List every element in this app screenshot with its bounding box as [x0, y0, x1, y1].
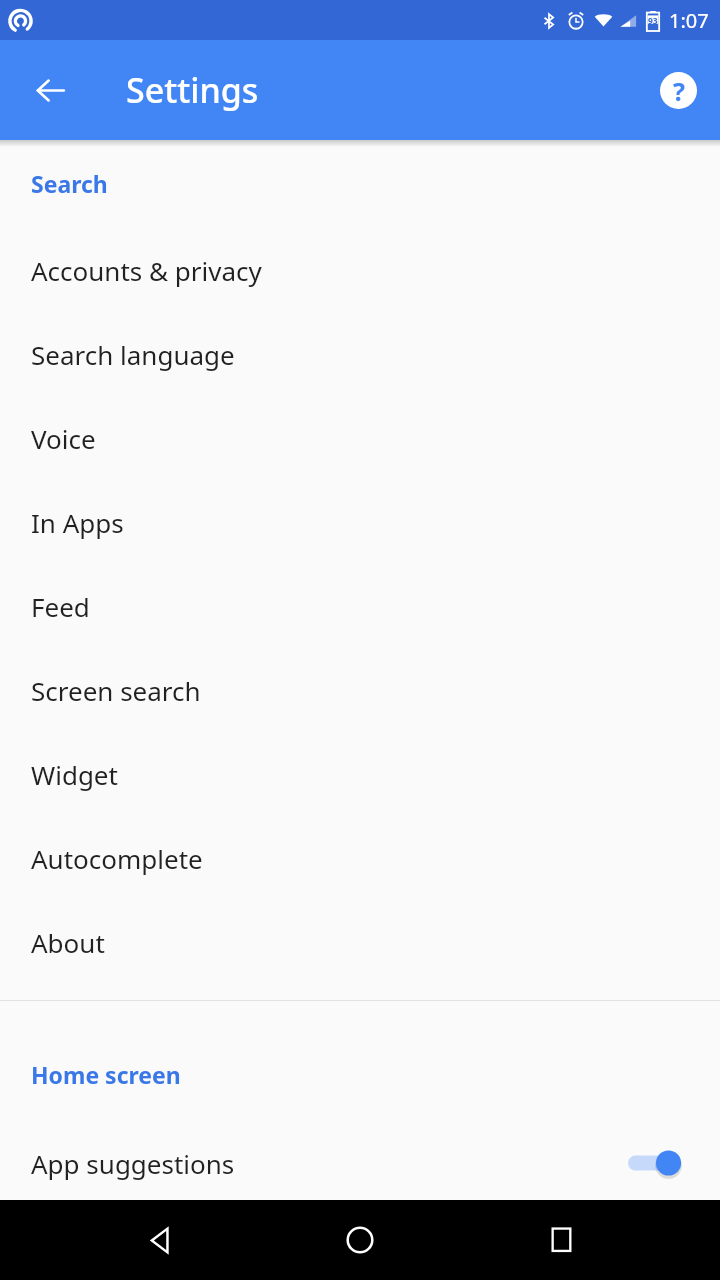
button[interactable]: Allow rotation: [0, 1205, 720, 1280]
staticText: 1:07: [669, 7, 709, 34]
staticText: Widget: [31, 757, 118, 792]
staticText: ?: [673, 74, 685, 108]
button[interactable]: Back: [122, 1202, 198, 1278]
button[interactable]: App suggestions: [0, 1121, 720, 1205]
staticText: Feed: [31, 589, 90, 624]
staticText: Home screen: [31, 1059, 181, 1090]
button[interactable]: About: [0, 900, 720, 984]
button[interactable]: Home: [322, 1202, 398, 1278]
staticText: Settings: [126, 67, 259, 113]
button[interactable]: Widget: [0, 732, 720, 816]
staticText: Voice: [31, 421, 96, 456]
button[interactable]: Feed: [0, 564, 720, 648]
staticText: Search language: [31, 337, 235, 372]
button[interactable]: Help: [651, 63, 705, 117]
button[interactable]: Recent apps: [524, 1202, 600, 1278]
staticText: 93: [648, 15, 658, 27]
button[interactable]: In Apps: [0, 480, 720, 564]
staticText: Allow rotation: [31, 1225, 202, 1260]
staticText: Autocomplete: [31, 841, 203, 876]
staticText: Search: [31, 168, 108, 199]
staticText: About: [31, 925, 105, 960]
button[interactable]: Autocomplete: [0, 816, 720, 900]
staticText: Screen search: [31, 673, 201, 708]
staticText: App suggestions: [31, 1146, 235, 1181]
staticText: Accounts & privacy: [31, 253, 262, 288]
button[interactable]: Voice: [0, 396, 720, 480]
button[interactable]: Screen search: [0, 648, 720, 732]
button[interactable]: Navigate up: [21, 61, 79, 119]
staticText: In Apps: [31, 505, 124, 540]
button[interactable]: Search language: [0, 312, 720, 396]
button[interactable]: Accounts & privacy: [0, 228, 720, 312]
